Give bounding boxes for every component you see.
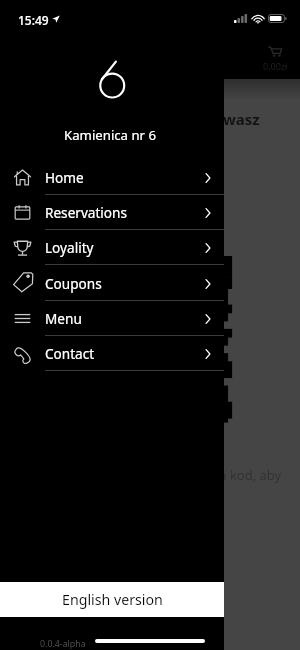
- staticText: Menu: [45, 309, 82, 328]
- button[interactable]: English version: [0, 582, 224, 617]
- button[interactable]: Loyality: [0, 230, 224, 265]
- button[interactable]: Contact: [0, 336, 224, 371]
- staticText: Kamienica nr 6: [64, 126, 157, 144]
- button[interactable]: Home: [0, 160, 224, 195]
- staticText: 0.0.4-alpha: [40, 638, 86, 650]
- staticText: Coupons: [45, 274, 102, 293]
- staticText: Contact: [45, 344, 95, 363]
- staticText: 0.00zł: [263, 60, 288, 72]
- staticText: English version: [62, 590, 163, 609]
- button[interactable]: Menu: [0, 301, 224, 336]
- button[interactable]: Reservations: [0, 195, 224, 230]
- button[interactable]: Cart: [261, 41, 289, 73]
- staticText: 15:49: [18, 12, 49, 28]
- staticText: Reservations: [45, 203, 127, 222]
- staticText: Pokaz ten kod, aby: [167, 466, 282, 484]
- staticText: Home: [45, 168, 84, 187]
- staticText: Loyality: [45, 238, 94, 257]
- staticText: Twoje nagrody—wasz: [98, 109, 260, 129]
- button[interactable]: Coupons: [0, 266, 224, 301]
